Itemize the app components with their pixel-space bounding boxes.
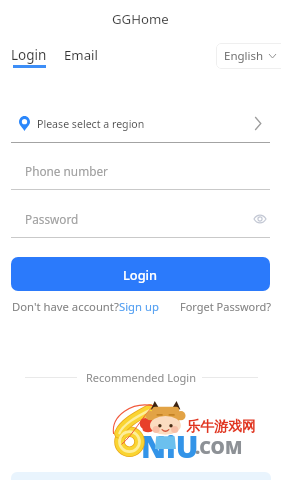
staticText: Login (123, 266, 158, 283)
staticText: GGHome (112, 10, 169, 28)
staticText: Sign up (119, 299, 159, 314)
button[interactable]: Login (11, 257, 270, 291)
button[interactable]: Don't have account? (12, 299, 159, 314)
button[interactable]: Email (64, 46, 98, 64)
staticText: Email (64, 46, 98, 64)
staticText: Login (11, 46, 47, 64)
staticText: Please select a region (37, 117, 145, 131)
staticText: Forget Password? (180, 299, 272, 314)
button[interactable]: English (216, 43, 281, 69)
staticText: Recommended Login (86, 370, 196, 385)
button[interactable]: Show password (249, 208, 271, 230)
staticText: NiU (141, 426, 199, 467)
staticText: Phone number (25, 163, 108, 177)
staticText: Password (25, 211, 79, 225)
button[interactable]: Login (11, 46, 47, 68)
staticText: .COM (195, 435, 243, 460)
staticText: 乐牛游戏网 (186, 418, 256, 436)
button[interactable]: Forget Password? (180, 299, 272, 314)
staticText: Don't have account? (12, 299, 119, 314)
staticText: English (224, 48, 264, 64)
button[interactable]: Please select a region (11, 108, 270, 139)
